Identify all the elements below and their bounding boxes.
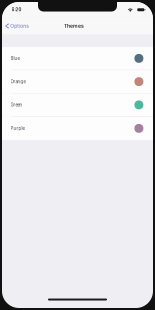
button[interactable]: Options <box>2 20 29 31</box>
staticText: Options <box>10 23 29 29</box>
button[interactable]: Green <box>2 93 153 117</box>
button[interactable]: Blue <box>2 47 153 70</box>
button[interactable]: Purple <box>2 117 153 140</box>
staticText: Blue <box>11 56 20 61</box>
staticText: Green <box>11 102 23 107</box>
staticText: Themes <box>64 23 84 29</box>
staticText: 6:20 <box>12 7 22 12</box>
button[interactable]: Orange <box>2 70 153 93</box>
staticText: Purple <box>11 126 25 131</box>
staticText: Orange <box>11 79 26 84</box>
